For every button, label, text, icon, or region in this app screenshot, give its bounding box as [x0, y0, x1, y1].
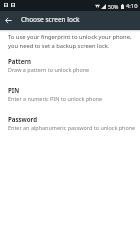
staticText: Password: [8, 115, 38, 123]
staticText: Draw a pattern to unlock phone: [8, 66, 90, 73]
button[interactable]: PIN: [8, 86, 137, 115]
staticText: 4:10: [126, 2, 138, 10]
staticText: To use your fingerprint to unlock your p…: [8, 33, 137, 50]
button[interactable]: Pattern: [8, 57, 137, 86]
staticText: Enter a numeric PIN to unlock phone: [8, 95, 103, 102]
button[interactable]: Password: [8, 115, 137, 144]
staticText: 50%: [108, 3, 119, 10]
staticText: Choose screen lock: [21, 15, 80, 24]
button[interactable]: Navigate up: [0, 11, 16, 30]
staticText: PIN: [8, 86, 20, 94]
staticText: Pattern: [8, 57, 32, 65]
staticText: Enter an alphanumeric password to unlock…: [8, 124, 136, 131]
